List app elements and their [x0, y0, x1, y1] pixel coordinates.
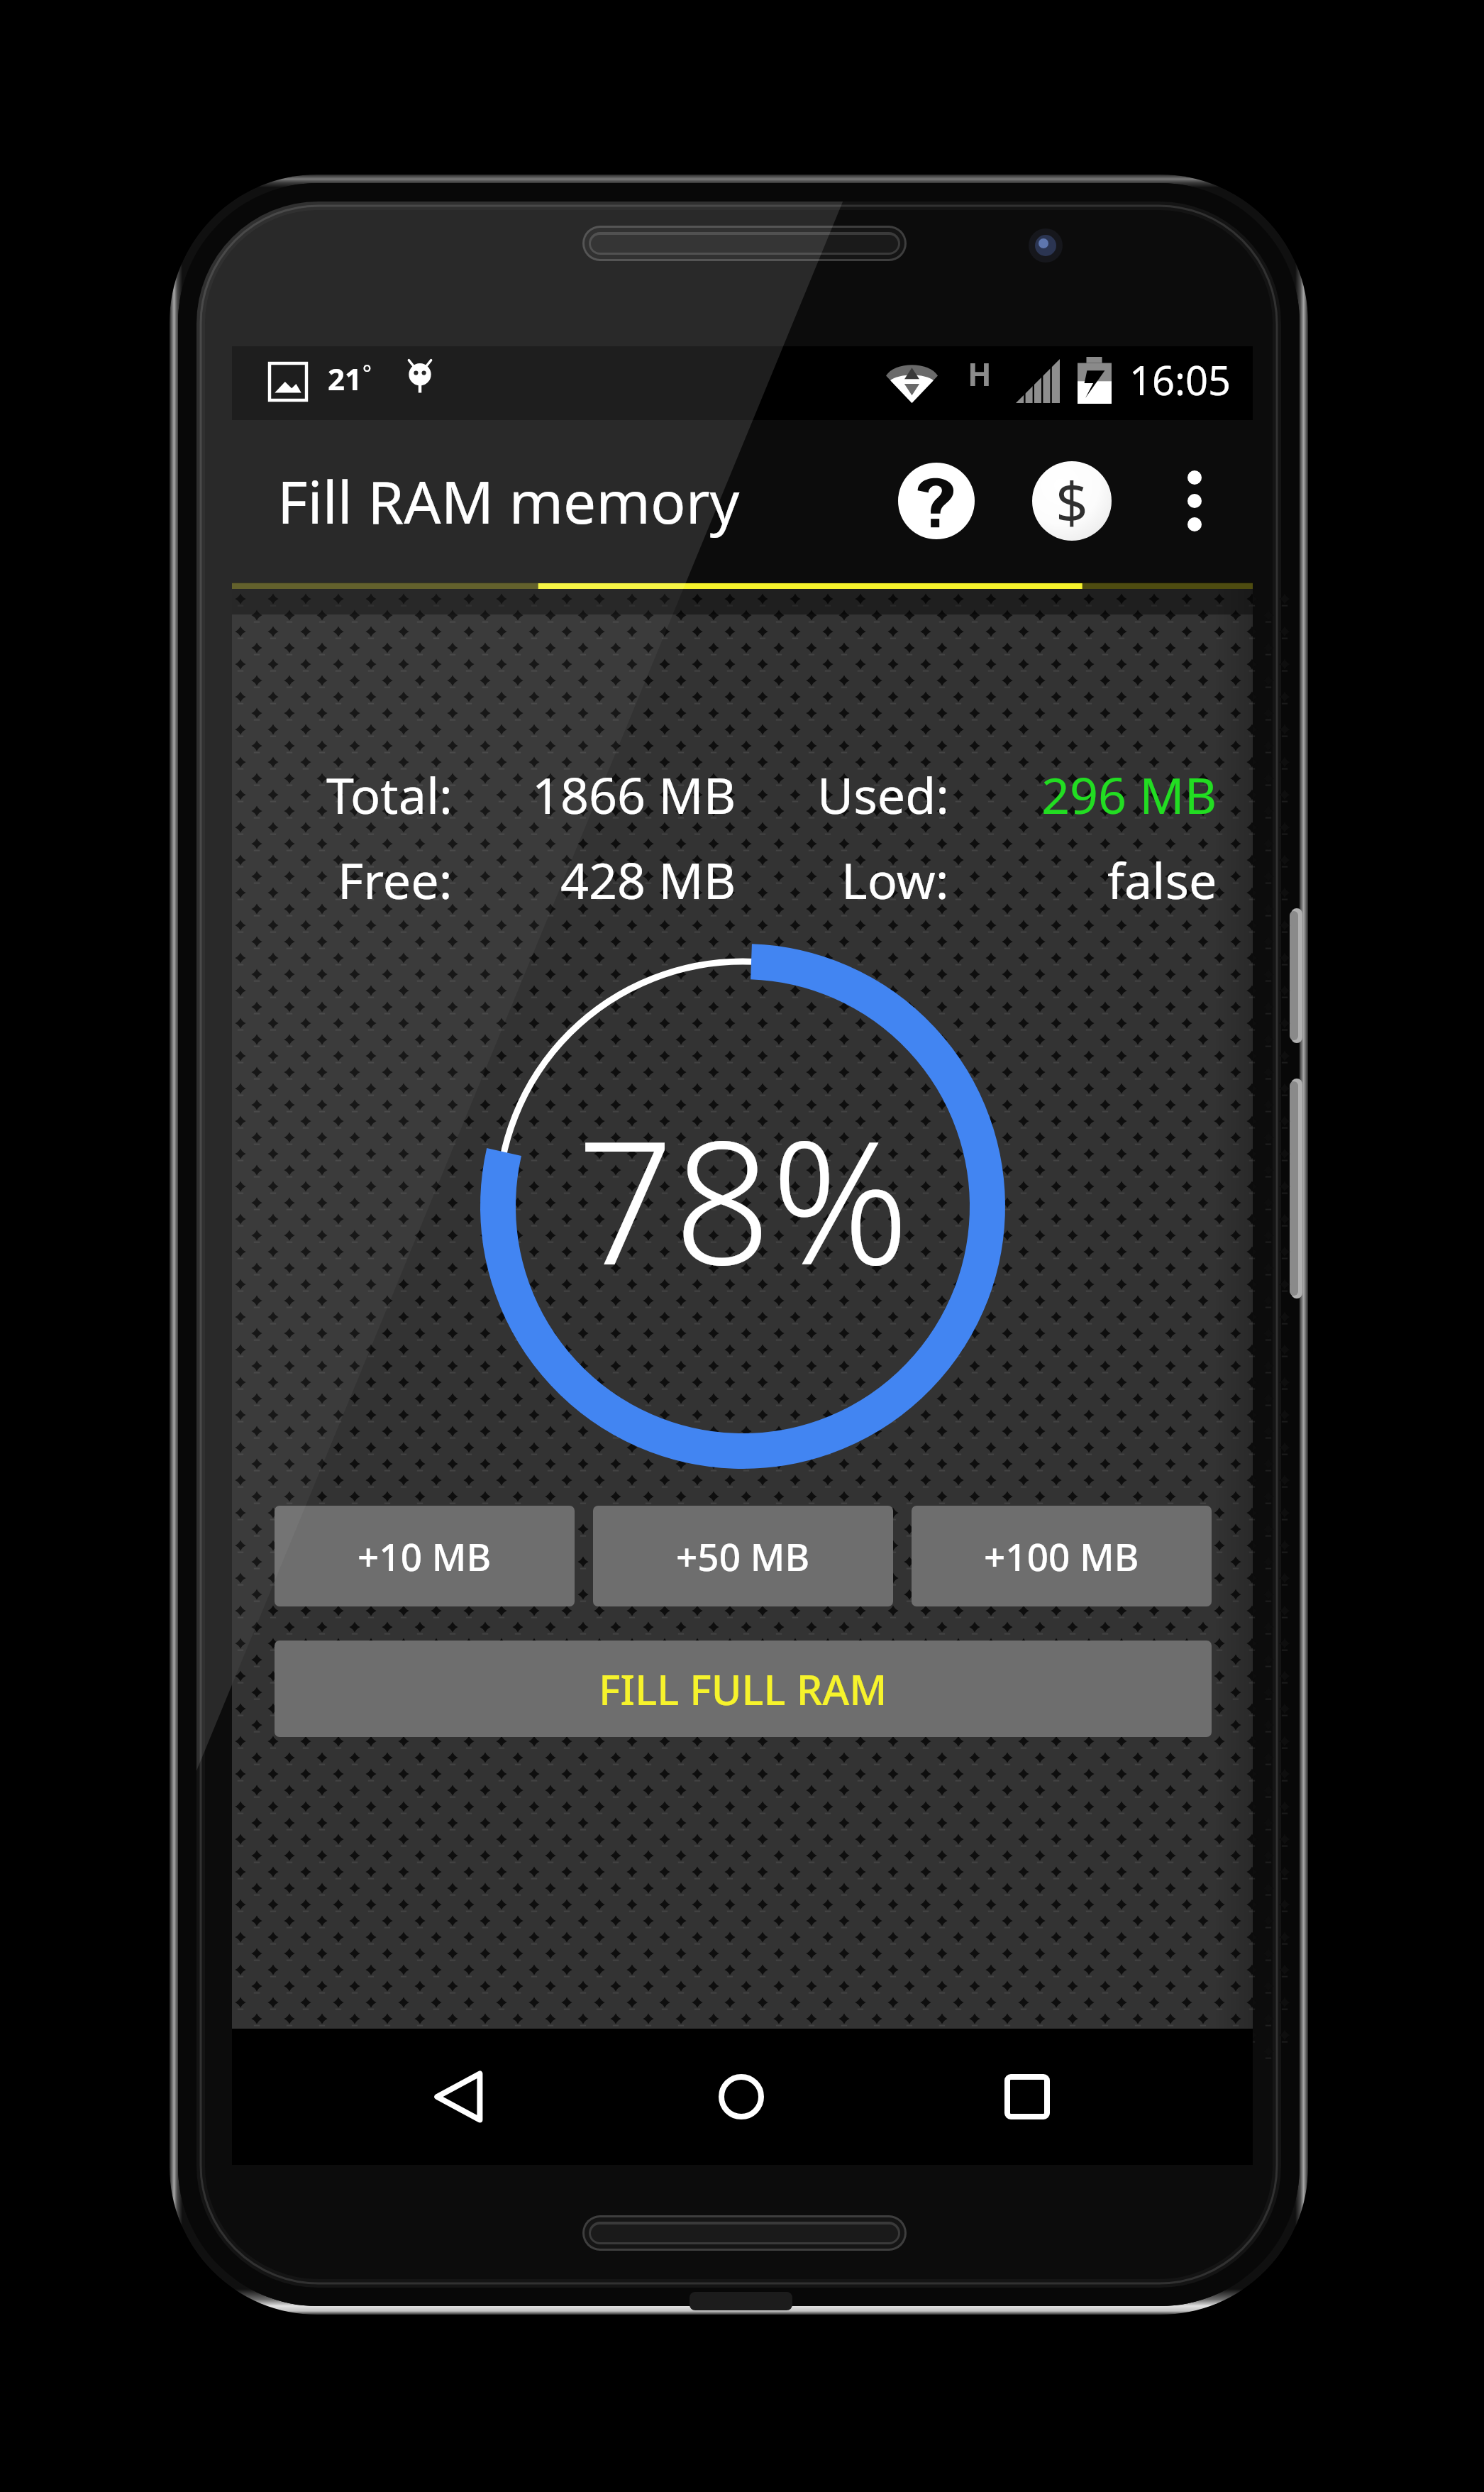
- staticText: +10 MB: [358, 1531, 492, 1582]
- staticText: 16:05: [1129, 353, 1231, 407]
- staticText: Fill RAM memory: [277, 461, 740, 541]
- button[interactable]: FILL FULL RAM: [275, 1641, 1212, 1737]
- staticText: 296 MB: [1041, 761, 1217, 828]
- button[interactable]: More options: [1151, 457, 1239, 545]
- button[interactable]: +100 MB: [912, 1506, 1212, 1606]
- staticText: Used:: [817, 761, 949, 828]
- button[interactable]: Fill RAM memory: [277, 420, 740, 582]
- button[interactable]: Recents: [970, 2040, 1084, 2154]
- button[interactable]: +50 MB: [593, 1506, 893, 1606]
- staticText: $: [1056, 463, 1088, 540]
- staticText: H: [968, 353, 992, 395]
- staticText: 78%: [577, 1082, 909, 1314]
- staticText: Low:: [841, 846, 949, 913]
- button[interactable]: Home: [685, 2040, 798, 2154]
- staticText: 21: [328, 358, 362, 399]
- staticText: +50 MB: [676, 1531, 810, 1582]
- staticText: 1866 MB: [532, 761, 736, 828]
- staticText: Free:: [338, 846, 453, 913]
- staticText: FILL FULL RAM: [599, 1661, 887, 1717]
- staticText: °: [362, 358, 372, 387]
- staticText: +100 MB: [984, 1531, 1139, 1582]
- button[interactable]: Remove ads: [1024, 453, 1120, 549]
- button[interactable]: Help: [888, 453, 985, 549]
- button[interactable]: Back: [402, 2040, 516, 2154]
- button[interactable]: +10 MB: [275, 1506, 575, 1606]
- staticText: Total:: [326, 761, 453, 828]
- staticText: 428 MB: [560, 846, 736, 913]
- staticText: false: [1107, 846, 1217, 913]
